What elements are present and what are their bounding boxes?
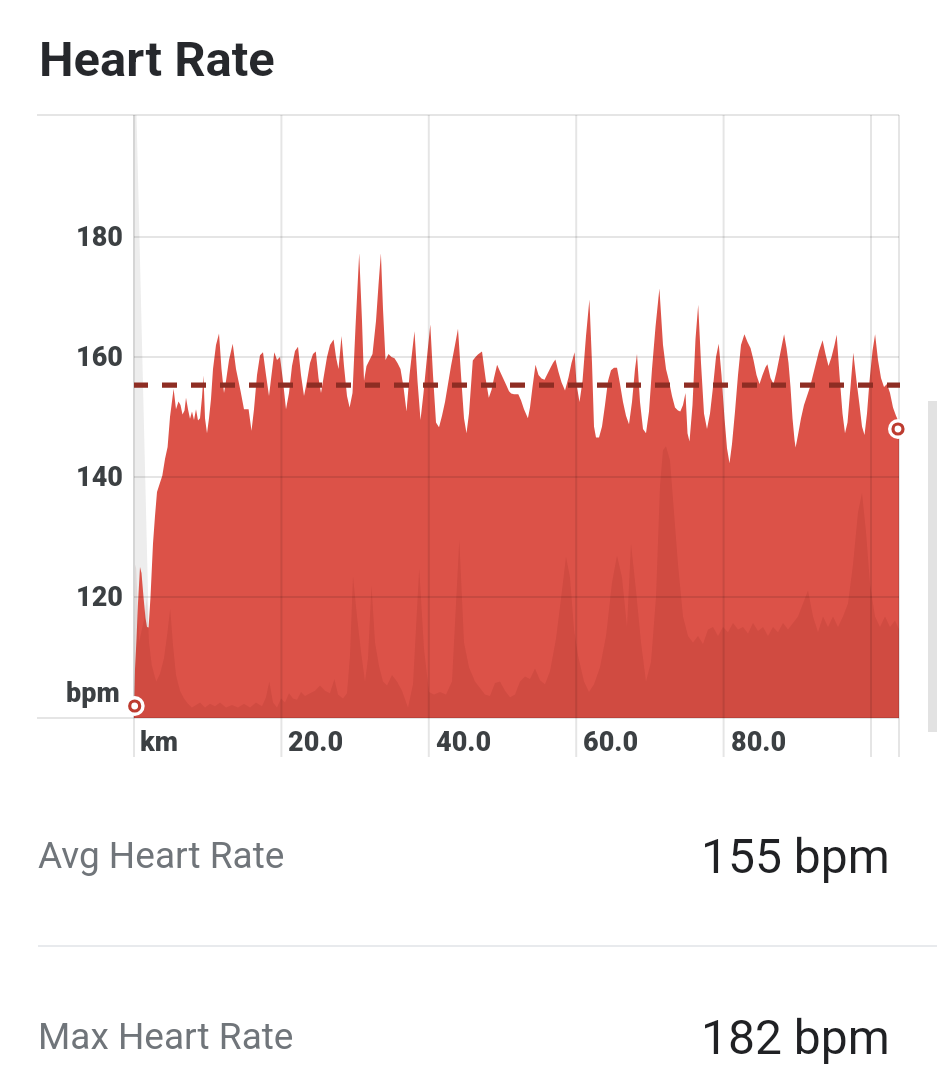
staticText: 140 [76,461,123,493]
staticText: 182 bpm [701,1009,890,1065]
staticText: 20.0 [288,726,344,758]
button[interactable]: Avg Heart Rate [0,766,937,945]
staticText: Max Heart Rate [38,1015,294,1058]
staticText: 60.0 [583,726,639,758]
staticText: bpm [66,677,120,709]
staticText: Heart Rate [39,31,275,88]
button[interactable]: Max Heart Rate [0,947,937,1080]
staticText: Avg Heart Rate [38,834,285,877]
staticText: 120 [76,581,123,613]
staticText: km [140,726,179,758]
staticText: 180 [76,221,123,253]
staticText: 160 [76,341,123,373]
staticText: 40.0 [436,726,492,758]
staticText: 80.0 [731,726,787,758]
button[interactable]: Heart rate chart over distance [37,115,900,758]
staticText: 155 bpm [701,828,890,884]
